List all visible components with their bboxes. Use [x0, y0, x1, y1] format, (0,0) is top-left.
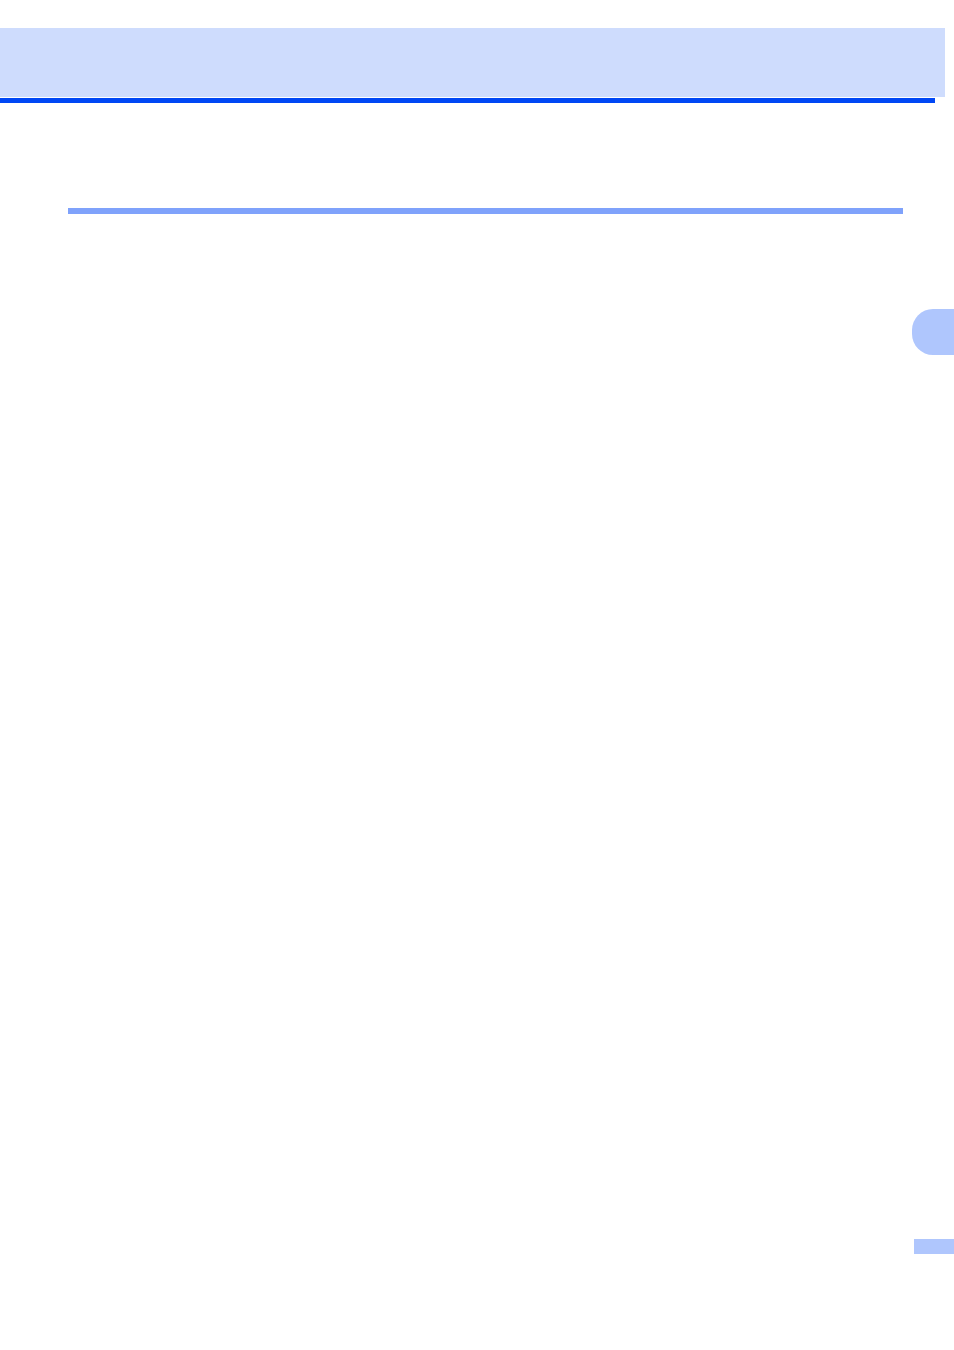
button[interactable]: Chapter thumb index tab — [912, 309, 954, 355]
